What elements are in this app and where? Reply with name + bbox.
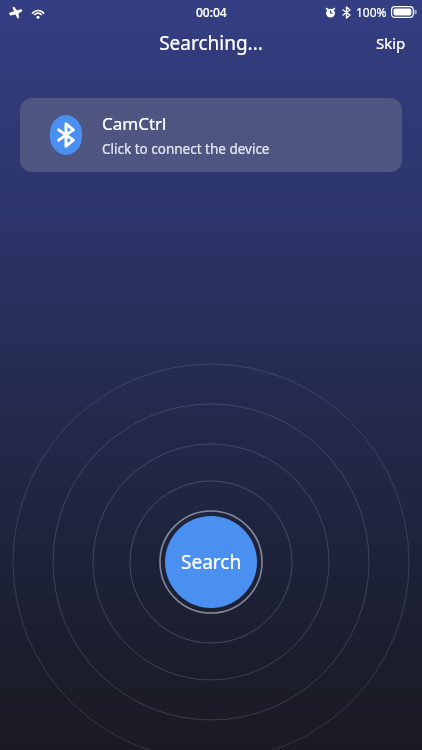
- button[interactable]: CamCtrl: [20, 98, 402, 172]
- staticText: 100%: [356, 4, 387, 20]
- staticText: Click to connect the device: [102, 140, 270, 158]
- staticText: 00:04: [196, 4, 227, 20]
- staticText: Skip: [376, 33, 406, 53]
- staticText: Searching...: [159, 30, 263, 56]
- staticText: Search: [181, 549, 242, 575]
- button[interactable]: Skip: [360, 27, 422, 59]
- button[interactable]: Search: [165, 516, 257, 608]
- staticText: CamCtrl: [102, 112, 167, 135]
